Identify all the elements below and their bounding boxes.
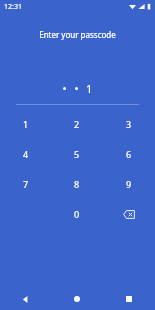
button[interactable]: Home	[51, 288, 103, 310]
staticText: 5	[74, 148, 80, 160]
button[interactable]: 1	[0, 117, 51, 131]
staticText: 6	[126, 148, 132, 160]
staticText: 1	[23, 118, 29, 130]
button[interactable]: 0	[51, 207, 103, 221]
staticText: 0	[74, 208, 80, 220]
staticText: 3	[126, 118, 132, 130]
staticText: 8	[74, 178, 80, 190]
button[interactable]: 3	[103, 117, 155, 131]
staticText: 12:31	[4, 2, 22, 12]
button[interactable]: 4	[0, 147, 51, 161]
button[interactable]: Backspace	[103, 207, 155, 221]
button[interactable]: 7	[0, 177, 51, 191]
button[interactable]: 8	[51, 177, 103, 191]
button[interactable]: 5	[51, 147, 103, 161]
button[interactable]: 6	[103, 147, 155, 161]
button[interactable]: 2	[51, 117, 103, 131]
button[interactable]: Back	[0, 288, 51, 310]
staticText: 7	[23, 178, 29, 190]
staticText: 4	[23, 148, 29, 160]
staticText: Enter your passcode	[0, 29, 155, 40]
staticText: 1	[86, 81, 93, 96]
staticText: 2	[74, 118, 80, 130]
button[interactable]: Recents	[103, 288, 155, 310]
staticText: 9	[126, 178, 132, 190]
button[interactable]: 9	[103, 177, 155, 191]
